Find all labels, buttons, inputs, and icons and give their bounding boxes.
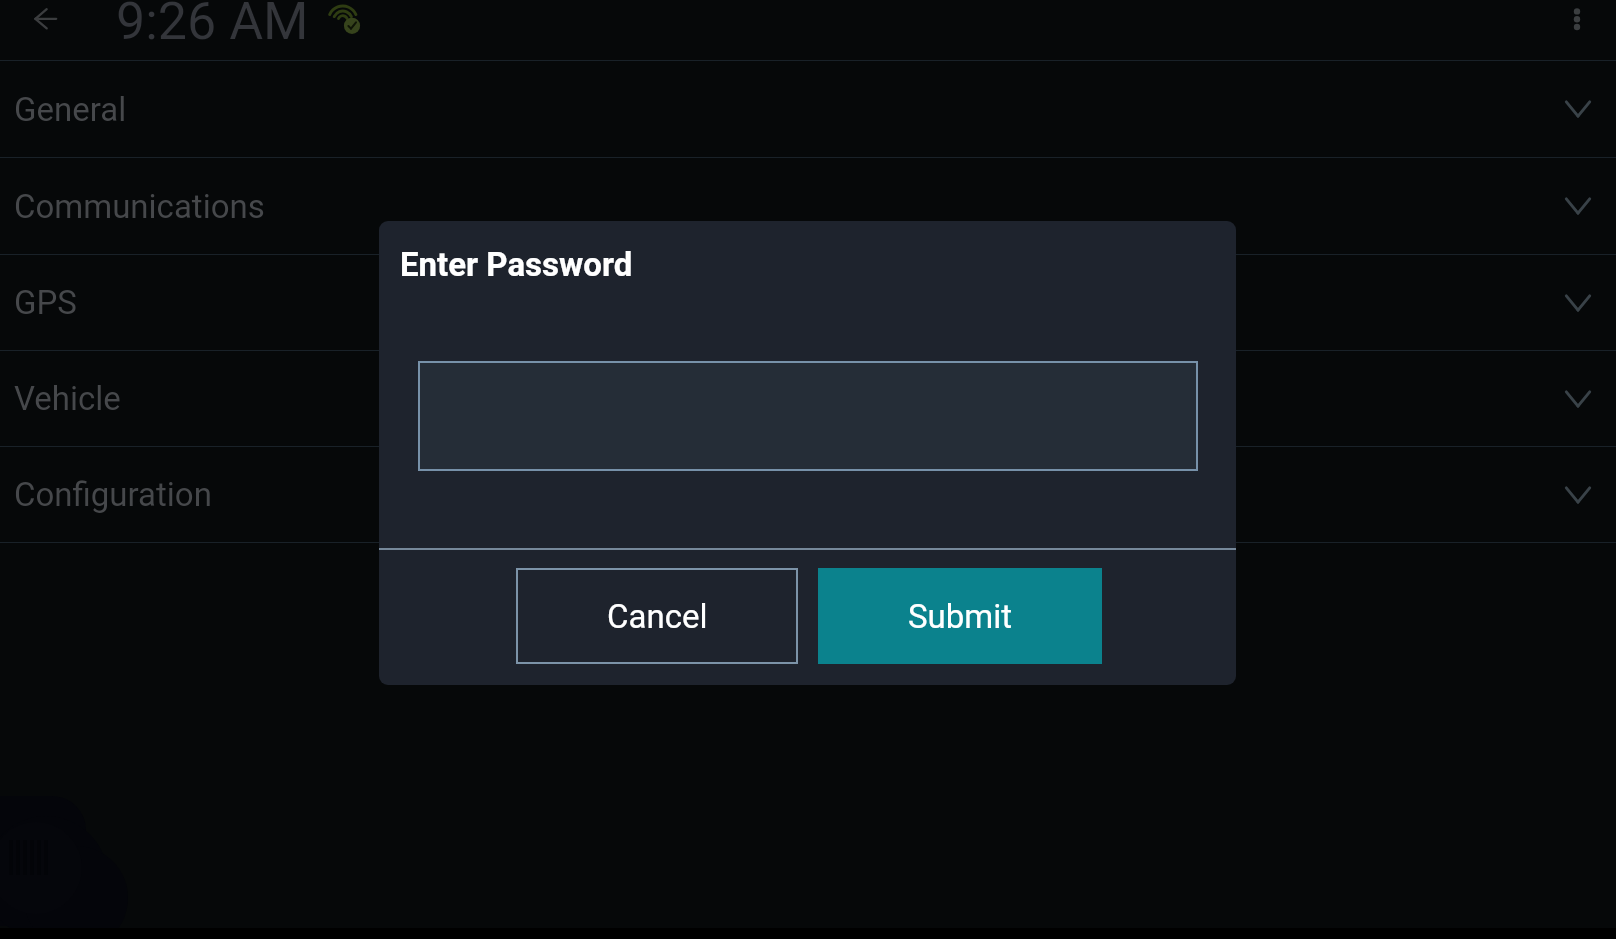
button[interactable]: Communications: [0, 158, 1616, 254]
staticText: GPS: [14, 283, 77, 322]
button[interactable]: Configuration: [0, 447, 1616, 542]
button[interactable]: Vehicle: [0, 351, 1616, 446]
button[interactable]: Submit: [818, 568, 1102, 664]
staticText: General: [14, 90, 127, 129]
button[interactable]: GPS: [0, 255, 1616, 350]
staticText: Communications: [14, 187, 265, 226]
staticText: Vehicle: [14, 379, 121, 418]
staticText: Cancel: [607, 597, 708, 636]
button[interactable]: Back: [12, 0, 60, 38]
button[interactable]: Password field: [418, 361, 1198, 471]
staticText: Configuration: [14, 475, 212, 514]
button[interactable]: General: [0, 61, 1616, 157]
staticText: Submit: [908, 597, 1013, 636]
button[interactable]: Cancel: [516, 568, 798, 664]
staticText: Enter Password: [400, 245, 633, 284]
staticText: 9:26 AM: [116, 0, 309, 52]
other: Wi-Fi connected: [326, 0, 366, 40]
button[interactable]: More options: [1557, 0, 1599, 40]
